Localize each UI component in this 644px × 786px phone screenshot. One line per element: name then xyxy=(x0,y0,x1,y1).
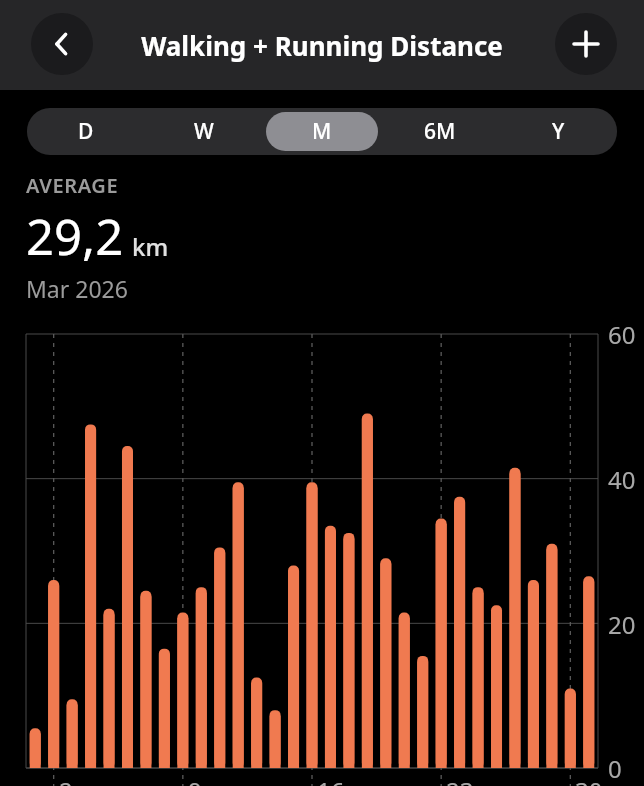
staticText: 30 xyxy=(575,774,603,786)
staticText: Y xyxy=(552,117,565,146)
button[interactable]: Add xyxy=(555,13,617,75)
staticText: D xyxy=(78,117,94,146)
staticText: 23 xyxy=(446,774,474,786)
staticText: 2 xyxy=(59,774,73,786)
staticText: 6M xyxy=(424,117,456,146)
button[interactable]: Y xyxy=(502,112,614,151)
staticText: Walking + Running Distance xyxy=(141,28,503,63)
staticText: AVERAGE xyxy=(26,172,119,199)
button[interactable]: M xyxy=(266,112,378,151)
button[interactable]: Back xyxy=(31,13,93,75)
staticText: M xyxy=(312,117,332,146)
button[interactable]: 6M xyxy=(384,112,496,151)
staticText: 40 xyxy=(608,463,636,496)
staticText: 0 xyxy=(608,752,622,785)
staticText: W xyxy=(194,117,214,146)
staticText: km xyxy=(132,230,169,263)
staticText: 16 xyxy=(317,774,345,786)
staticText: 20 xyxy=(608,608,636,641)
staticText: Mar 2026 xyxy=(26,273,128,304)
staticText: 60 xyxy=(608,318,636,351)
button[interactable]: D xyxy=(30,112,142,151)
staticText: 29,2 xyxy=(26,203,124,270)
button[interactable]: W xyxy=(148,112,260,151)
staticText: 9 xyxy=(188,774,202,786)
